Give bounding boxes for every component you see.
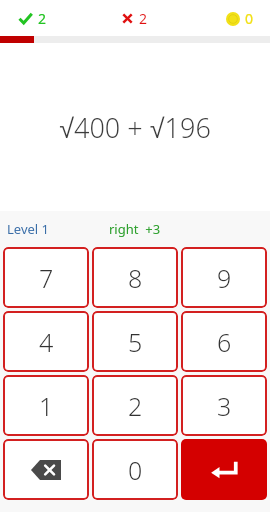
button[interactable]: 3 — [181, 375, 267, 436]
button[interactable]: 9 — [181, 247, 267, 308]
staticText: 7 — [39, 261, 54, 295]
staticText: 4 — [39, 325, 54, 359]
button[interactable]: 2 — [92, 375, 178, 436]
staticText: 5 — [128, 325, 143, 359]
button[interactable]: 1 — [3, 375, 89, 436]
staticText: 0 — [245, 9, 254, 28]
staticText: 8 — [128, 261, 143, 295]
button[interactable]: 4 — [3, 311, 89, 372]
button[interactable]: 5 — [92, 311, 178, 372]
button[interactable]: 0 — [92, 439, 178, 500]
button[interactable]: Backspace — [3, 439, 89, 500]
button[interactable]: 7 — [3, 247, 89, 308]
staticText: 0 — [128, 453, 143, 487]
staticText: right +3 — [109, 220, 161, 238]
staticText: 9 — [217, 261, 232, 295]
button[interactable]: 0 — [226, 9, 254, 28]
staticText: 3 — [217, 389, 232, 423]
staticText: Level 1 — [7, 220, 49, 238]
staticText: 2 — [38, 9, 47, 28]
staticText: 6 — [217, 325, 232, 359]
staticText: 1 — [39, 389, 54, 423]
staticText: 2 — [139, 9, 148, 28]
button[interactable]: 6 — [181, 311, 267, 372]
button[interactable]: 2 — [18, 9, 47, 28]
staticText: 2 — [128, 389, 143, 423]
button[interactable]: 2 — [122, 9, 148, 28]
button[interactable]: Enter — [181, 439, 267, 500]
staticText: √400 + √196 — [59, 109, 211, 146]
button[interactable]: 8 — [92, 247, 178, 308]
